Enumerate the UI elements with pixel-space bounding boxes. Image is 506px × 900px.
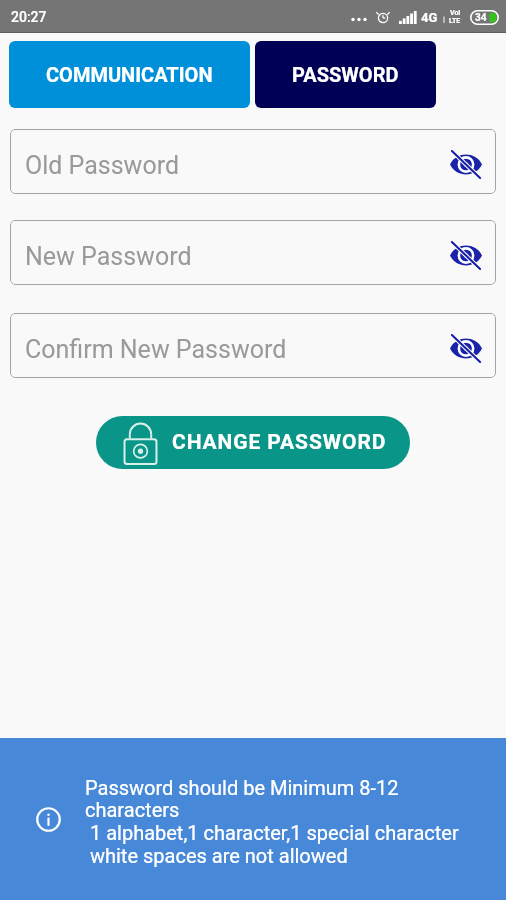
staticText: 20:27 bbox=[11, 9, 47, 25]
button[interactable]: CHANGE PASSWORD bbox=[96, 416, 410, 469]
button[interactable]: PASSWORD bbox=[255, 41, 436, 108]
button[interactable]: Confirm New Password bbox=[10, 313, 496, 378]
button[interactable]: Toggle password visibility bbox=[450, 146, 482, 178]
staticText: VoI bbox=[450, 9, 461, 17]
staticText: Confirm New Password bbox=[25, 335, 287, 364]
staticText: Password should be Minimum 8-12 characte… bbox=[85, 776, 470, 868]
button[interactable]: COMMUNICATION bbox=[9, 41, 250, 108]
staticText: 4G bbox=[421, 10, 438, 25]
staticText: 34 bbox=[475, 12, 487, 24]
button[interactable]: Password should be Minimum 8-12 characte… bbox=[0, 738, 506, 900]
button[interactable]: New Password bbox=[10, 220, 496, 285]
button[interactable]: Toggle password visibility bbox=[450, 237, 482, 269]
staticText: LTE bbox=[449, 17, 461, 25]
button[interactable]: Old Password bbox=[10, 129, 496, 194]
staticText: COMMUNICATION bbox=[46, 63, 213, 86]
button[interactable]: Toggle password visibility bbox=[450, 330, 482, 362]
staticText: Old Password bbox=[25, 151, 180, 180]
staticText: New Password bbox=[25, 242, 192, 271]
staticText: CHANGE PASSWORD bbox=[172, 430, 387, 455]
staticText: PASSWORD bbox=[292, 63, 399, 86]
